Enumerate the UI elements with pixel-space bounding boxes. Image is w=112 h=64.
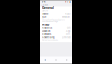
staticText: Limited <box>62 36 70 39</box>
staticText: Contacts <box>42 33 51 36</box>
staticText: 9:41 <box>42 1 46 3</box>
button[interactable]: Analytics <box>40 26 72 30</box>
staticText: ıll ᯤ ▮ <box>65 1 70 3</box>
button[interactable]: Theme <box>40 12 72 15</box>
staticText: Theme <box>42 13 48 15</box>
staticText: ‹ <box>42 3 43 7</box>
staticText: Size <box>42 16 46 18</box>
staticText: Off <box>66 33 70 36</box>
staticText: Choose how this app adapts to <box>42 19 65 21</box>
button[interactable]: Location <box>40 30 72 33</box>
staticText: Advertising <box>42 36 54 39</box>
staticText: your device settings. <box>42 20 58 22</box>
button[interactable]: Advertising <box>40 36 72 39</box>
staticText: Privacy <box>42 23 49 26</box>
staticText: Medium <box>62 16 70 18</box>
staticText: Back <box>43 3 48 6</box>
staticText: On <box>67 27 70 29</box>
button[interactable]: Home <box>40 56 51 63</box>
staticText: General <box>42 6 54 10</box>
staticText: Ask <box>66 30 70 32</box>
staticText: Auto <box>65 13 70 15</box>
staticText: Data stays on device. <box>42 39 58 41</box>
button[interactable]: Search <box>51 56 61 63</box>
button[interactable]: Settings <box>61 56 72 63</box>
staticText: Analytics <box>42 27 52 29</box>
button[interactable]: Size <box>40 15 72 19</box>
button[interactable]: ‹ <box>41 3 49 6</box>
button[interactable]: Contacts <box>40 33 72 36</box>
staticText: DISPLAY <box>42 10 48 12</box>
staticText: Location <box>42 30 50 32</box>
